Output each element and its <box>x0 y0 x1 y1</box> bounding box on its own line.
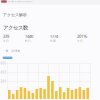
staticText: 1440 <box>25 34 33 39</box>
staticText: 600 <box>0 62 6 65</box>
staticText: 訪問数 <box>12 49 21 53</box>
staticText: 200 <box>0 80 6 83</box>
staticText: 今日 <box>3 39 9 42</box>
staticText: 先週 <box>50 39 56 42</box>
staticText: 1774 <box>50 34 58 39</box>
staticText: 400 <box>0 71 6 74</box>
button[interactable]: Site <box>1 0 7 3</box>
staticText: アクセス解析 <box>3 12 27 17</box>
staticText: 20116 <box>77 34 87 39</box>
staticText: アクセス数 <box>3 24 28 31</box>
staticText: 239 <box>3 34 9 39</box>
staticText: 昨日 <box>25 39 31 42</box>
button[interactable]: Date range <box>3 57 13 59</box>
staticText: アクセス解析 | サイト管理 ダッシュボード 月次レポート <box>7 0 32 2</box>
staticText: 今月 <box>77 39 83 42</box>
